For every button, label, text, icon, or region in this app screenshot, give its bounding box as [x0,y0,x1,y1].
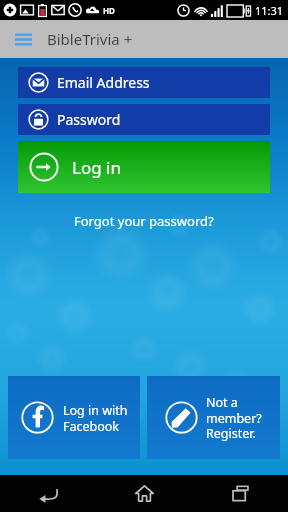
button[interactable]: Log in with Facebook [8,376,140,459]
button[interactable]: Log in [18,141,270,193]
staticText: BibleTrivia + [47,29,133,49]
button[interactable]: Back [22,475,74,512]
button[interactable]: Recent apps [214,475,266,512]
staticText: Email Address [57,73,150,92]
button[interactable]: Open navigation menu [8,24,38,54]
staticText: Log in with Facebook [63,402,128,434]
staticText: Log in [72,156,121,179]
staticText: Password [57,110,121,129]
button[interactable]: Home [118,475,170,512]
button[interactable]: Forgot your password? [70,208,218,234]
button[interactable]: Not a member? Register. [147,376,280,459]
staticText: 11:31 [255,3,284,18]
staticText: Not a member? Register. [206,394,262,441]
button[interactable]: Email Address [18,67,270,98]
button[interactable]: Password [18,104,270,135]
staticText: HD [103,5,115,16]
